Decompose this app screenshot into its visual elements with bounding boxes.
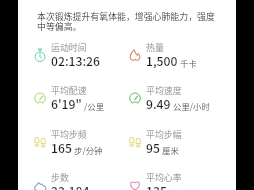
staticText: 平均步幅 <box>146 128 182 141</box>
staticText: 23,184 <box>51 182 90 190</box>
staticText: 本次锻炼提升有氧体能，增强心肺能力，强度中等偏高。 <box>37 10 217 33</box>
staticText: 平均配速 <box>51 84 87 97</box>
staticText: 千卡 <box>180 57 197 69</box>
button[interactable]: 运动时间 <box>33 40 128 70</box>
staticText: 02:13:26 <box>51 52 100 70</box>
button[interactable]: 平均速度 <box>128 83 223 113</box>
staticText: 6'19" <box>51 95 82 113</box>
staticText: 步数 <box>51 171 69 184</box>
staticText: 165 <box>51 139 72 157</box>
staticText: 公里/小时 <box>173 100 210 112</box>
staticText: 厘米 <box>162 144 179 156</box>
staticText: 热量 <box>146 41 164 54</box>
button[interactable]: 步数 <box>33 170 128 190</box>
staticText: 95 <box>146 139 160 157</box>
staticText: /公里 <box>84 100 105 112</box>
staticText: 9.49 <box>146 95 171 113</box>
button[interactable]: 热量 <box>128 40 223 70</box>
staticText: 平均步频 <box>51 128 87 141</box>
staticText: 1,500 <box>146 52 178 70</box>
staticText: 步/分钟 <box>74 144 103 156</box>
staticText: 135 <box>146 182 167 190</box>
button[interactable]: 平均心率 <box>128 170 223 190</box>
button[interactable]: 平均步频 <box>33 127 128 157</box>
button[interactable]: 平均配速 <box>33 83 128 113</box>
staticText: 运动时间 <box>51 41 87 54</box>
staticText: 平均心率 <box>146 171 182 184</box>
staticText: 平均速度 <box>146 84 182 97</box>
button[interactable]: 平均步幅 <box>128 127 223 157</box>
